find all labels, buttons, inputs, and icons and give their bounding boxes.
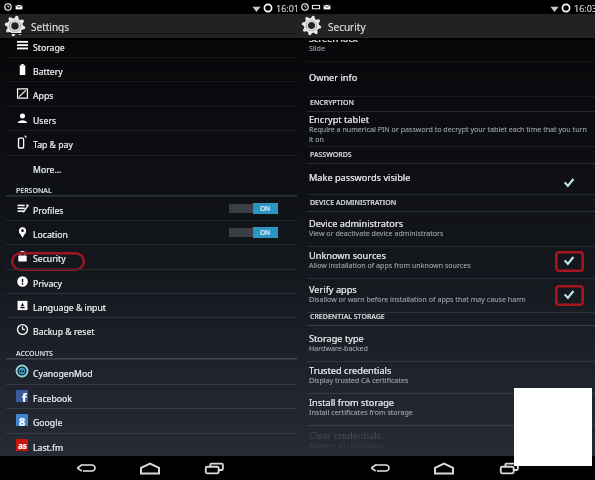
- button[interactable]: Battery: [0, 57, 297, 81]
- staticText: 16:01: [276, 2, 300, 14]
- button[interactable]: Location: [0, 220, 297, 244]
- staticText: ON: [260, 228, 271, 237]
- staticText: ON: [260, 204, 271, 213]
- button[interactable]: Home: [134, 456, 166, 480]
- staticText: CyanogenMod: [33, 368, 93, 380]
- button[interactable]: Apps: [0, 81, 297, 105]
- staticText: Language & input: [33, 302, 106, 314]
- staticText: Disallow or warn before installation of …: [309, 294, 579, 304]
- button[interactable]: Clear credentials: [297, 427, 595, 459]
- staticText: Facebook: [33, 393, 72, 405]
- staticText: as: [18, 440, 27, 451]
- button[interactable]: Recent apps: [198, 456, 230, 480]
- button[interactable]: Settings icon: [297, 14, 595, 38]
- staticText: Storage: [33, 42, 65, 54]
- button[interactable]: More...: [0, 155, 297, 179]
- button[interactable]: Tap & pay: [0, 130, 297, 154]
- staticText: Settings: [31, 20, 70, 34]
- button[interactable]: Profiles: [0, 196, 297, 220]
- staticText: More...: [33, 164, 62, 176]
- button[interactable]: Recent apps: [493, 456, 525, 480]
- button[interactable]: Privacy: [0, 269, 297, 293]
- staticText: Battery: [33, 66, 63, 78]
- button[interactable]: Back: [70, 456, 102, 480]
- staticText: ACCOUNTS: [16, 349, 53, 359]
- button[interactable]: 8: [0, 408, 297, 432]
- button[interactable]: Storage type: [297, 330, 595, 362]
- staticText: Allow installation of apps from unknown …: [309, 260, 579, 270]
- staticText: PERSONAL: [16, 186, 52, 196]
- staticText: Storage type: [309, 332, 364, 345]
- staticText: Profiles: [33, 205, 64, 217]
- staticText: View or deactivate device administrators: [309, 228, 579, 238]
- staticText: f: [22, 390, 27, 402]
- staticText: ENCRYPTION: [310, 98, 354, 108]
- button[interactable]: Users: [0, 106, 297, 130]
- button[interactable]: Unknown sources: [297, 247, 595, 279]
- button[interactable]: Language & input: [0, 293, 297, 317]
- other: Settings icon: [301, 15, 322, 36]
- staticText: Install from storage: [309, 396, 394, 409]
- button[interactable]: Home: [428, 456, 460, 480]
- button[interactable]: Verify apps: [297, 281, 595, 313]
- staticText: CREDENTIAL STORAGE: [310, 312, 385, 322]
- staticText: Security: [33, 253, 66, 265]
- button[interactable]: Back: [364, 456, 396, 480]
- staticText: Encrypt tablet: [309, 113, 370, 126]
- staticText: Display trusted CA certificates: [309, 375, 579, 385]
- staticText: Make passwords visible: [309, 171, 411, 184]
- staticText: Remove all certificates: [309, 440, 579, 450]
- button[interactable]: as: [0, 433, 297, 457]
- button[interactable]: Screen lock: [297, 30, 595, 62]
- staticText: Hardware-backed: [309, 343, 579, 353]
- staticText: Require a numerical PIN or password to d…: [309, 124, 589, 144]
- button[interactable]: Owner info: [297, 69, 595, 97]
- staticText: Last.fm: [33, 442, 64, 454]
- staticText: 8: [19, 414, 26, 426]
- button[interactable]: Device administrators: [297, 215, 595, 247]
- button[interactable]: Encrypt tablet: [297, 111, 595, 147]
- staticText: Verify apps: [309, 283, 357, 296]
- staticText: Trusted credentials: [309, 364, 392, 377]
- staticText: Unknown sources: [309, 249, 386, 262]
- button[interactable]: Settings icon: [0, 14, 297, 38]
- staticText: PASSWORDS: [310, 150, 352, 160]
- staticText: Tap & pay: [33, 139, 73, 151]
- staticText: Privacy: [33, 278, 62, 290]
- other: Settings icon: [4, 15, 26, 37]
- staticText: Backup & reset: [33, 326, 95, 338]
- button[interactable]: Make passwords visible: [297, 169, 595, 195]
- staticText: Screen lock: [309, 32, 358, 45]
- staticText: 16:03: [574, 2, 595, 14]
- staticText: Owner info: [309, 71, 358, 84]
- button[interactable]: Backup & reset: [0, 317, 297, 341]
- button[interactable]: Install from storage: [297, 394, 595, 426]
- staticText: Location: [33, 229, 68, 241]
- staticText: Users: [33, 115, 57, 127]
- button[interactable]: CyanogenMod: [0, 359, 297, 383]
- staticText: Install certificates from storage: [309, 407, 579, 417]
- button[interactable]: Trusted credentials: [297, 362, 595, 394]
- staticText: Security: [328, 20, 366, 34]
- staticText: Slide: [309, 43, 579, 53]
- staticText: Google: [33, 417, 63, 429]
- button[interactable]: Security: [0, 244, 297, 268]
- staticText: Clear credentials: [309, 429, 382, 442]
- button[interactable]: f: [0, 384, 297, 408]
- staticText: Device administrators: [309, 217, 404, 230]
- staticText: Apps: [33, 90, 54, 102]
- staticText: DEVICE ADMINISTRATION: [310, 198, 397, 208]
- button[interactable]: Storage: [0, 33, 297, 57]
